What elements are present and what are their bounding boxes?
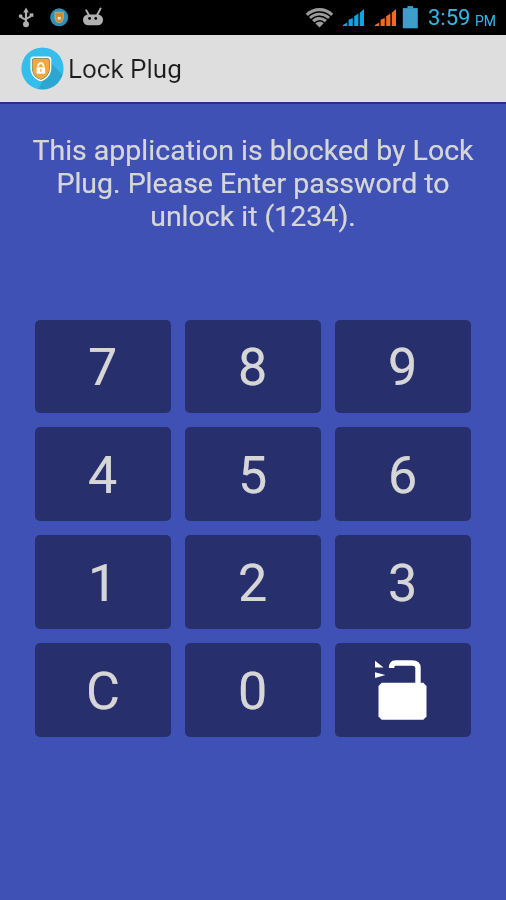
staticText: 3 — [388, 553, 418, 614]
staticText: 1 — [88, 553, 118, 614]
staticText: 4 — [88, 445, 118, 506]
button[interactable]: C — [35, 643, 171, 737]
staticText: 5 — [238, 445, 268, 506]
button[interactable]: 6 — [335, 427, 471, 521]
staticText: 8 — [238, 337, 268, 398]
staticText: Lock Plug — [68, 54, 182, 84]
button[interactable]: 7 — [35, 320, 171, 413]
staticText: PM — [475, 13, 497, 29]
button[interactable]: 5 — [185, 427, 321, 521]
staticText: 3:59 — [428, 5, 471, 31]
staticText: This application is blocked by Lock Plug… — [22, 134, 484, 233]
button[interactable]: 0 — [185, 643, 321, 737]
staticText: C — [86, 661, 120, 722]
button[interactable]: 8 — [185, 320, 321, 413]
button[interactable]: 3 — [335, 535, 471, 629]
button[interactable]: 2 — [185, 535, 321, 629]
staticText: 9 — [388, 337, 418, 398]
button[interactable]: 9 — [335, 320, 471, 413]
staticText: 7 — [88, 337, 118, 398]
staticText: 6 — [388, 445, 418, 506]
staticText: 0 — [238, 661, 268, 722]
button[interactable]: 1 — [35, 535, 171, 629]
staticText: 2 — [238, 553, 268, 614]
button[interactable]: Unlock — [335, 643, 471, 737]
button[interactable]: 4 — [35, 427, 171, 521]
